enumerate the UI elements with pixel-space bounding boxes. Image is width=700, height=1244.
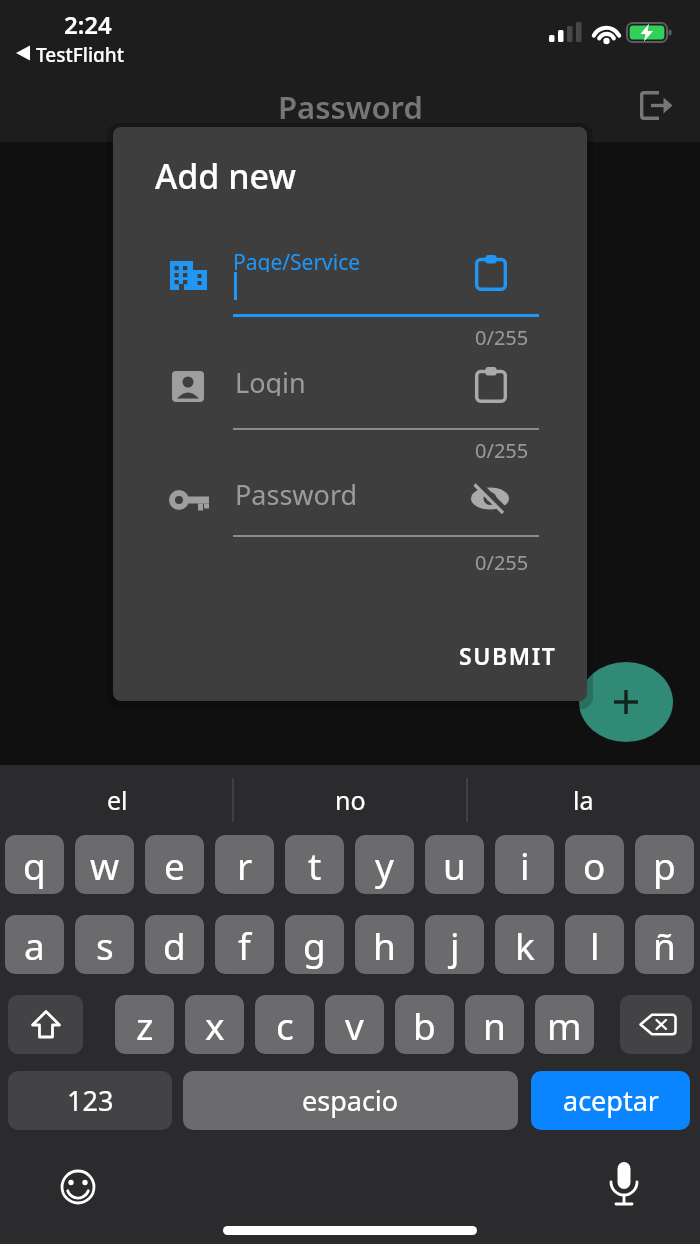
button[interactable] — [8, 995, 83, 1054]
staticText: e — [164, 840, 185, 890]
staticText: d — [163, 920, 186, 970]
button[interactable]: q — [5, 835, 64, 894]
staticText: 0/255 — [475, 437, 529, 461]
button[interactable]: s — [75, 915, 134, 974]
button[interactable]: v — [325, 995, 384, 1054]
button[interactable]: e — [145, 835, 204, 894]
staticText: Login — [235, 364, 306, 396]
staticText: l — [590, 920, 600, 970]
button[interactable]: i — [495, 835, 554, 894]
button[interactable]: a — [5, 915, 64, 974]
button[interactable]: g — [285, 915, 344, 974]
staticText: 2:24 — [64, 8, 112, 34]
button[interactable]: p — [635, 835, 694, 894]
button[interactable]: k — [495, 915, 554, 974]
button[interactable]: r — [215, 835, 274, 894]
button[interactable] — [594, 1155, 654, 1219]
staticText: r — [237, 840, 253, 890]
staticText: no — [335, 783, 366, 817]
button[interactable] — [620, 995, 692, 1054]
staticText: 0/255 — [475, 324, 529, 348]
staticText: b — [413, 1000, 436, 1050]
button[interactable]: l — [565, 915, 624, 974]
staticText: x — [205, 1000, 225, 1050]
staticText: v — [345, 1000, 364, 1050]
staticText: z — [136, 1000, 154, 1050]
button[interactable] — [233, 349, 539, 429]
staticText: 123 — [67, 1082, 114, 1119]
staticText: TestFlight — [36, 42, 125, 62]
button[interactable] — [233, 235, 539, 315]
staticText: y — [375, 840, 394, 890]
staticText: p — [653, 840, 676, 890]
staticText: k — [515, 920, 535, 970]
staticText: aceptar — [563, 1082, 659, 1119]
button[interactable] — [48, 1157, 108, 1217]
button[interactable]: z — [115, 995, 174, 1054]
staticText: t — [308, 840, 322, 890]
staticText: h — [373, 920, 396, 970]
staticText: la — [573, 783, 594, 817]
staticText: s — [96, 920, 114, 970]
staticText: c — [276, 1000, 294, 1050]
button[interactable]: u — [425, 835, 484, 894]
button[interactable]: j — [425, 915, 484, 974]
button[interactable]: SUBMIT — [427, 632, 557, 678]
staticText: 0/255 — [475, 549, 529, 573]
staticText: SUBMIT — [459, 640, 557, 671]
staticText: Add new — [155, 153, 296, 193]
button[interactable]: d — [145, 915, 204, 974]
button[interactable]: espacio — [183, 1071, 518, 1130]
button[interactable]: t — [285, 835, 344, 894]
button[interactable]: ñ — [635, 915, 694, 974]
staticText: Page/Service — [233, 248, 361, 272]
button[interactable]: x — [185, 995, 244, 1054]
button[interactable] — [579, 662, 673, 742]
button[interactable]: h — [355, 915, 414, 974]
staticText: j — [450, 920, 460, 970]
staticText: q — [23, 840, 46, 890]
button[interactable]: 123 — [8, 1071, 172, 1130]
staticText: espacio — [302, 1082, 399, 1119]
staticText: g — [303, 920, 326, 970]
staticText: f — [238, 920, 251, 970]
button[interactable]: y — [355, 835, 414, 894]
button[interactable]: el — [10, 779, 224, 821]
button[interactable]: la — [476, 779, 690, 821]
button[interactable]: b — [395, 995, 454, 1054]
staticText: ñ — [653, 920, 676, 970]
staticText: Password — [235, 476, 358, 508]
button[interactable] — [630, 80, 690, 132]
staticText: w — [90, 840, 120, 890]
staticText: a — [24, 920, 45, 970]
button[interactable]: n — [465, 995, 524, 1054]
button[interactable]: m — [535, 995, 594, 1054]
staticText: i — [520, 840, 530, 890]
button[interactable]: no — [243, 779, 457, 821]
button[interactable]: o — [565, 835, 624, 894]
button[interactable]: w — [75, 835, 134, 894]
button[interactable]: f — [215, 915, 274, 974]
staticText: Password — [278, 86, 423, 126]
button[interactable]: c — [255, 995, 314, 1054]
staticText: o — [583, 840, 606, 890]
button[interactable]: aceptar — [531, 1071, 690, 1130]
staticText: el — [107, 783, 128, 817]
staticText: n — [483, 1000, 506, 1050]
staticText: u — [443, 840, 466, 890]
button[interactable] — [233, 457, 539, 537]
staticText: m — [547, 1000, 582, 1050]
